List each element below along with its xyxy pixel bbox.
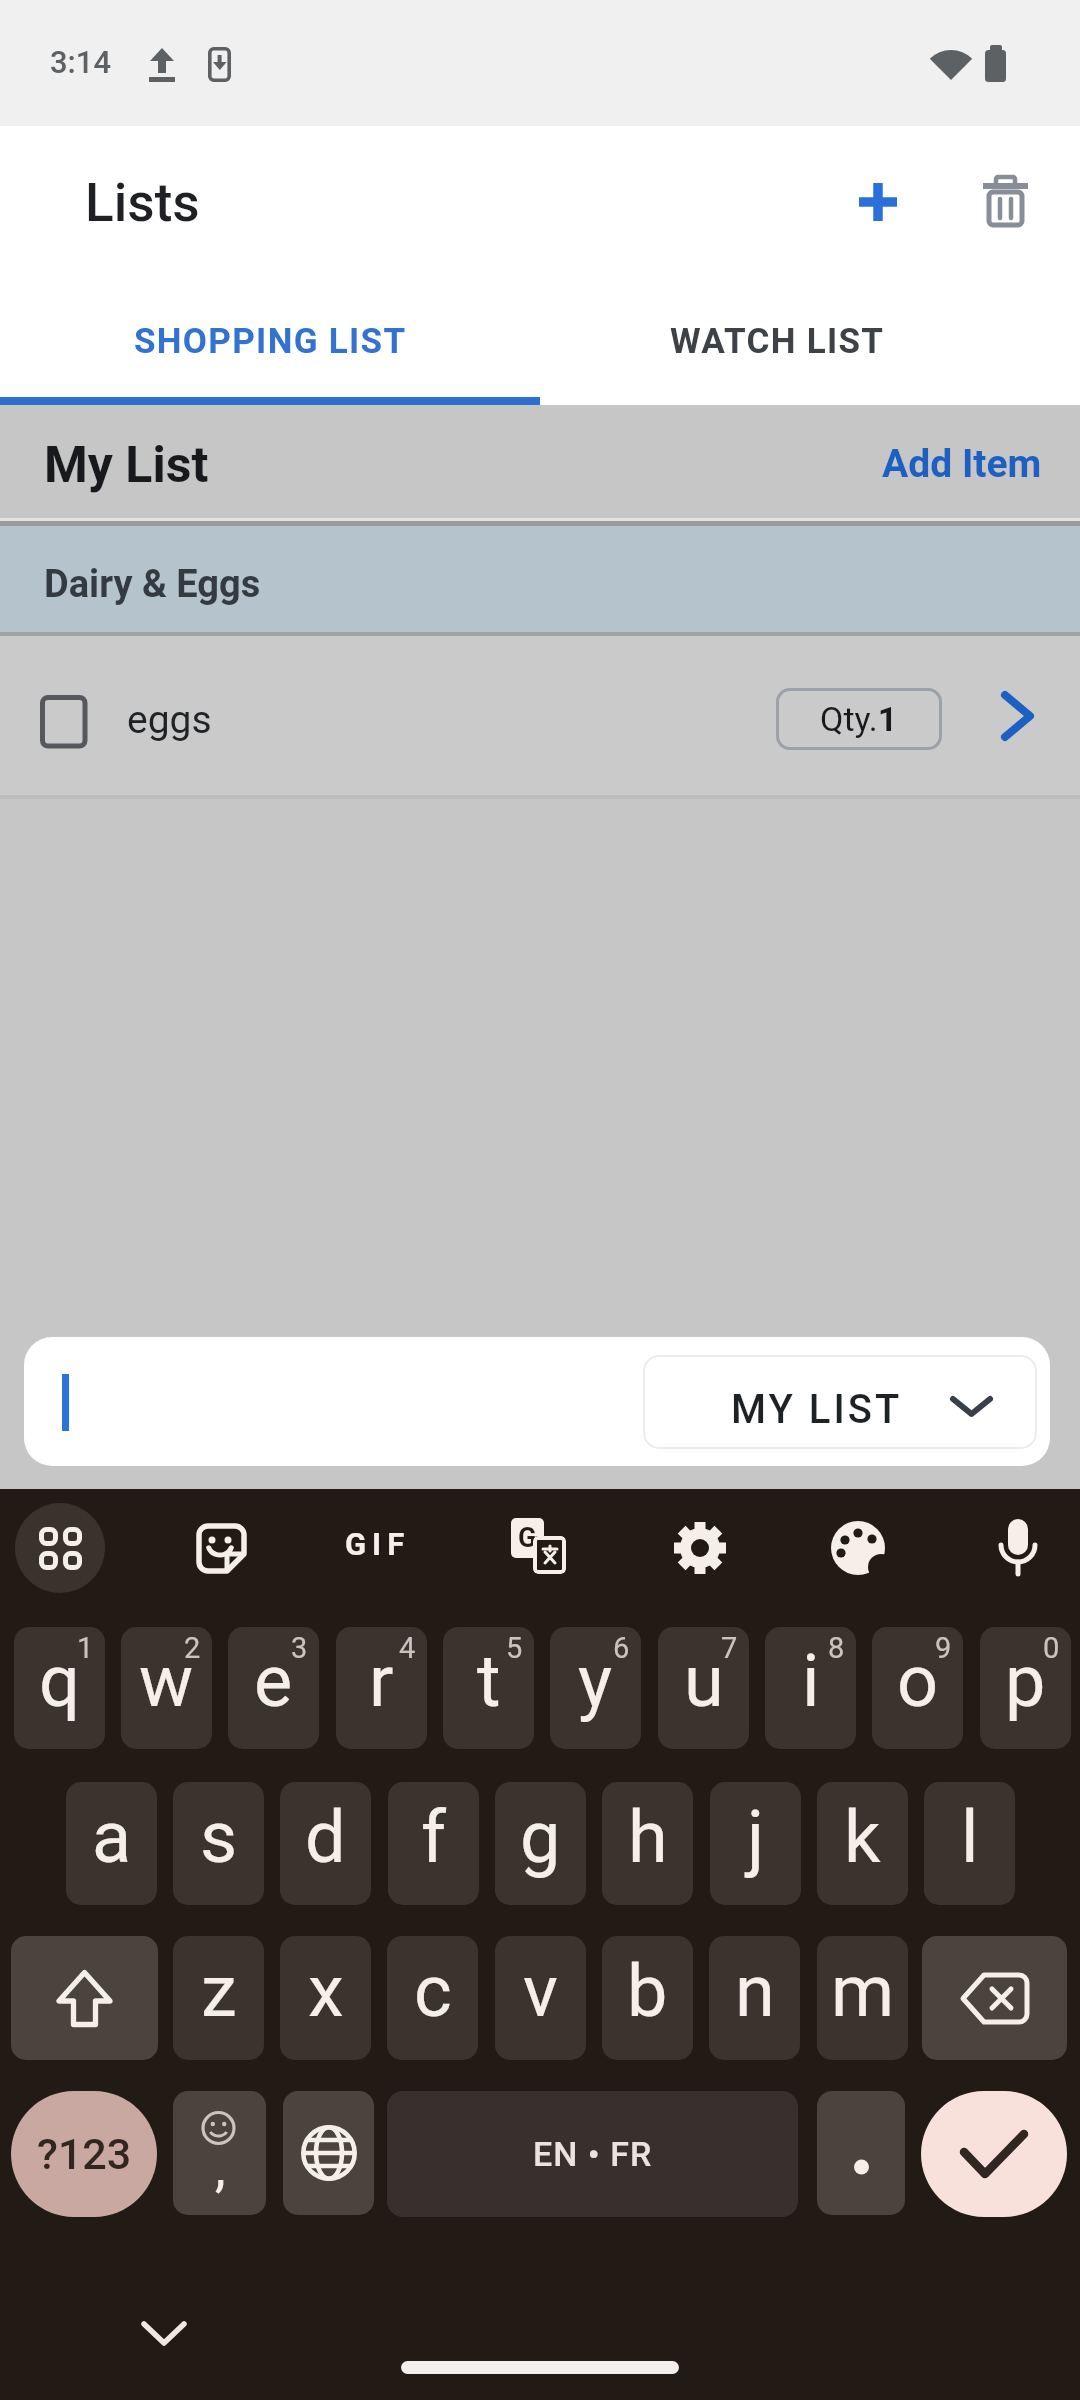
- button[interactable]: ?123: [11, 2091, 157, 2217]
- staticText: c: [414, 1949, 452, 2033]
- button[interactable]: MY LIST: [24, 1337, 1050, 1466]
- staticText: y: [578, 1639, 613, 1723]
- button[interactable]: EN • FR: [387, 2091, 798, 2217]
- button[interactable]: y: [550, 1627, 641, 1749]
- staticText: Qty.1: [820, 699, 898, 739]
- button[interactable]: Qty.1: [776, 688, 942, 750]
- button[interactable]: g: [495, 1782, 586, 1905]
- button[interactable]: p: [980, 1627, 1071, 1749]
- button[interactable]: [988, 1515, 1048, 1581]
- button[interactable]: w: [121, 1627, 212, 1749]
- button[interactable]: SHOPPING LIST: [0, 285, 540, 397]
- staticText: v: [523, 1949, 558, 2033]
- staticText: WATCH LIST: [670, 321, 885, 362]
- staticText: My List: [44, 436, 209, 495]
- button[interactable]: o: [872, 1627, 963, 1749]
- button[interactable]: GIF: [338, 1514, 418, 1574]
- button[interactable]: u: [658, 1627, 749, 1749]
- button[interactable]: k: [817, 1782, 908, 1905]
- button[interactable]: [828, 1518, 888, 1578]
- button[interactable]: [120, 2299, 208, 2369]
- button[interactable]: e: [228, 1627, 319, 1749]
- staticText: u: [684, 1639, 724, 1723]
- staticText: EN • FR: [533, 2134, 653, 2174]
- button[interactable]: h: [602, 1782, 693, 1905]
- button[interactable]: r: [336, 1627, 427, 1749]
- staticText: a: [92, 1795, 132, 1879]
- staticText: z: [201, 1949, 237, 2033]
- button[interactable]: [283, 2091, 374, 2215]
- staticText: GIF: [345, 1526, 411, 1562]
- button[interactable]: z: [173, 1936, 264, 2060]
- staticText: 5: [506, 1631, 523, 1665]
- button[interactable]: [11, 1936, 158, 2060]
- button[interactable]: [15, 1503, 105, 1593]
- staticText: r: [369, 1639, 394, 1723]
- button[interactable]: s: [173, 1782, 264, 1905]
- button[interactable]: q: [14, 1627, 105, 1749]
- staticText: i: [802, 1639, 820, 1723]
- button[interactable]: ,: [173, 2091, 266, 2215]
- staticText: 7: [721, 1631, 738, 1665]
- staticText: f: [421, 1795, 447, 1879]
- staticText: 3:14: [50, 44, 112, 80]
- button[interactable]: [191, 1518, 251, 1578]
- staticText: m: [831, 1949, 895, 2033]
- staticText: 3: [291, 1631, 308, 1665]
- staticText: 4: [399, 1631, 416, 1665]
- staticText: b: [627, 1949, 668, 2033]
- button[interactable]: a: [66, 1782, 157, 1905]
- button[interactable]: v: [495, 1936, 586, 2060]
- button[interactable]: m: [817, 1936, 908, 2060]
- staticText: 9: [935, 1631, 952, 1665]
- staticText: d: [305, 1795, 346, 1879]
- button[interactable]: x: [280, 1936, 371, 2060]
- button[interactable]: l: [924, 1782, 1015, 1905]
- staticText: l: [961, 1795, 979, 1879]
- staticText: G: [518, 1522, 537, 1554]
- button[interactable]: b: [602, 1936, 693, 2060]
- button[interactable]: [670, 1518, 730, 1578]
- staticText: eggs: [127, 697, 212, 743]
- staticText: g: [520, 1795, 561, 1879]
- button[interactable]: f: [388, 1782, 479, 1905]
- staticText: Dairy & Eggs: [44, 562, 261, 607]
- staticText: j: [747, 1795, 765, 1879]
- button[interactable]: [921, 2091, 1067, 2217]
- button[interactable]: eggs: [0, 636, 1080, 795]
- staticText: ,: [215, 2136, 226, 2199]
- staticText: 1: [77, 1631, 94, 1665]
- staticText: h: [628, 1795, 668, 1879]
- button[interactable]: j: [710, 1782, 801, 1905]
- staticText: o: [897, 1639, 939, 1723]
- staticText: n: [735, 1949, 775, 2033]
- staticText: 0: [1043, 1631, 1060, 1665]
- staticText: ?123: [37, 2129, 132, 2179]
- button[interactable]: G: [508, 1518, 568, 1578]
- staticText: t: [477, 1639, 501, 1723]
- staticText: 2: [184, 1631, 201, 1665]
- staticText: w: [139, 1639, 194, 1723]
- button[interactable]: d: [280, 1782, 371, 1905]
- staticText: 6: [613, 1631, 630, 1665]
- button[interactable]: MY LIST: [643, 1355, 1037, 1449]
- button[interactable]: [985, 676, 1051, 756]
- staticText: Add Item: [882, 441, 1042, 487]
- button[interactable]: c: [387, 1936, 478, 2060]
- staticText: k: [844, 1795, 881, 1879]
- staticText: q: [39, 1639, 80, 1723]
- button[interactable]: [922, 1936, 1067, 2060]
- button[interactable]: [973, 169, 1037, 233]
- staticText: s: [200, 1795, 238, 1879]
- button[interactable]: t: [443, 1627, 534, 1749]
- button[interactable]: n: [709, 1936, 800, 2060]
- staticText: x: [308, 1949, 344, 2033]
- staticText: SHOPPING LIST: [134, 321, 407, 362]
- staticText: Lists: [85, 172, 200, 234]
- button[interactable]: [846, 170, 910, 234]
- button[interactable]: i: [765, 1627, 856, 1749]
- button[interactable]: [817, 2091, 905, 2215]
- button[interactable]: WATCH LIST: [540, 285, 1014, 397]
- button[interactable]: Add Item: [882, 441, 1042, 487]
- staticText: e: [254, 1639, 293, 1723]
